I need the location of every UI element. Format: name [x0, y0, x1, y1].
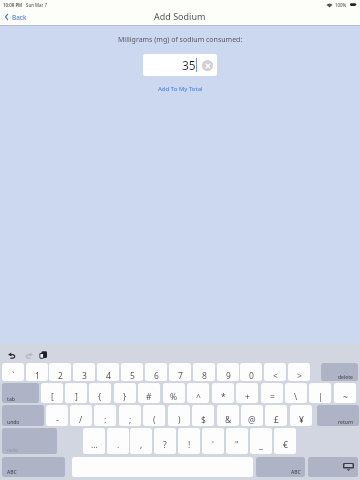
button[interactable]: ( [143, 405, 165, 426]
staticText: 1 [35, 370, 40, 381]
staticText: + [245, 391, 250, 403]
button[interactable]: { [89, 383, 111, 403]
staticText: @ [248, 414, 256, 426]
button[interactable]: & [217, 405, 239, 426]
staticText: = [270, 391, 275, 403]
staticText: 0 [249, 370, 254, 381]
staticText: return [338, 419, 354, 426]
button[interactable]: ' [202, 428, 224, 454]
button[interactable]: 35 [143, 54, 217, 76]
button[interactable]: , [130, 428, 152, 454]
staticText: 9 [226, 370, 231, 381]
button[interactable]: [ [41, 383, 63, 403]
button[interactable]: ABC [256, 457, 305, 477]
button[interactable]: 3 [73, 363, 95, 381]
button[interactable]: ? [154, 428, 176, 454]
staticText: ABC [291, 469, 301, 476]
button[interactable]: - [46, 405, 68, 426]
staticText: 10:09 PM [3, 2, 23, 8]
staticText: \ [294, 391, 298, 403]
staticText: ... [91, 439, 98, 451]
staticText: & [225, 414, 232, 426]
staticText: , [140, 439, 143, 451]
button[interactable]: Undo [8, 352, 16, 359]
button[interactable]: % [163, 383, 185, 403]
button[interactable]: " [226, 428, 248, 454]
button[interactable]: 2 [49, 363, 71, 381]
button[interactable]: ^ [187, 383, 209, 403]
button[interactable]: Hide keyboard [308, 457, 358, 477]
staticText: * [221, 391, 226, 403]
button[interactable]: ... [83, 428, 105, 454]
staticText: - [56, 414, 59, 426]
button[interactable]: ) [168, 405, 190, 426]
staticText: Add To My Total [158, 85, 203, 93]
staticText: 4 [106, 370, 111, 381]
button[interactable]: ¥ [290, 405, 312, 426]
button[interactable]: 8 [193, 363, 215, 381]
button[interactable]: Redo [25, 352, 33, 359]
staticText: ` [12, 370, 15, 381]
button[interactable]: return [317, 405, 359, 426]
button[interactable]: £ [265, 405, 287, 426]
button[interactable]: > [288, 363, 310, 381]
button[interactable]: 1 [26, 363, 48, 381]
button[interactable]: delete [321, 363, 358, 381]
button[interactable]: 5 [121, 363, 143, 381]
button[interactable]: \ [285, 383, 307, 403]
button[interactable]: Add To My Total [154, 83, 207, 95]
button[interactable]: / [70, 405, 92, 426]
button[interactable]: undo [2, 405, 44, 426]
staticText: Milligrams (mg) of sodium consumed: [118, 35, 243, 45]
button[interactable]: < [264, 363, 286, 381]
staticText: # [146, 391, 152, 403]
staticText: " [235, 439, 239, 451]
staticText: tab [7, 396, 15, 403]
staticText: 2 [58, 370, 63, 381]
button[interactable]: $ [192, 405, 214, 426]
button[interactable]: Clear text [202, 60, 213, 71]
button[interactable]: ! [178, 428, 200, 454]
button[interactable]: ; [119, 405, 141, 426]
button[interactable]: tab [2, 383, 39, 403]
button[interactable]: € [274, 428, 296, 454]
staticText: { [98, 391, 102, 403]
staticText: 5 [130, 370, 135, 381]
button[interactable]: + [236, 383, 258, 403]
button[interactable]: ABC [2, 457, 65, 477]
button[interactable]: @ [241, 405, 263, 426]
staticText: } [123, 391, 127, 403]
button[interactable]: 6 [145, 363, 167, 381]
staticText: 8 [202, 370, 207, 381]
button[interactable]: ~ [334, 383, 356, 403]
staticText: 6 [154, 370, 159, 381]
staticText: ' [212, 439, 214, 451]
button[interactable]: 7 [169, 363, 191, 381]
button[interactable]: ` [2, 363, 24, 381]
button[interactable]: 4 [97, 363, 119, 381]
button[interactable]: 9 [217, 363, 239, 381]
button[interactable]: . [107, 428, 129, 454]
staticText: ^ [196, 391, 201, 403]
button[interactable]: ] [65, 383, 87, 403]
button[interactable]: Back [4, 10, 28, 24]
button[interactable]: * [212, 383, 234, 403]
staticText: . [117, 439, 120, 451]
button[interactable]: | [309, 383, 331, 403]
button[interactable]: # [138, 383, 160, 403]
staticText: ( [153, 414, 156, 426]
button[interactable]: } [114, 383, 136, 403]
staticText: Sun Mar 7 [26, 2, 48, 8]
button[interactable]: : [94, 405, 116, 426]
staticText: < [273, 370, 278, 381]
staticText: ¥ [299, 414, 304, 426]
staticText: ~ [343, 391, 348, 403]
button[interactable]: 0 [240, 363, 262, 381]
button[interactable]: = [261, 383, 283, 403]
button[interactable]: Paste [39, 351, 47, 359]
staticText: / [79, 414, 83, 426]
staticText: ABC [7, 469, 17, 476]
button[interactable]: _ [250, 428, 272, 454]
